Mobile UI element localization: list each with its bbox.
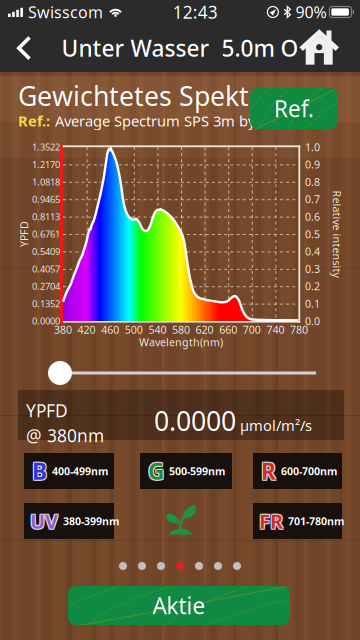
staticText: 0.6	[305, 209, 320, 224]
staticText: FR	[258, 509, 282, 535]
staticText: 12:43	[173, 0, 218, 23]
staticText: FR	[258, 507, 282, 533]
staticText: 580	[172, 322, 190, 337]
button[interactable]: UV	[24, 503, 114, 539]
staticText: Average Spectrum SPS 3m by R.	[55, 111, 272, 130]
staticText: Gewichtetes Spektrum	[18, 78, 301, 113]
staticText: 0.2	[305, 279, 320, 293]
staticText: 500-599nm	[169, 464, 225, 478]
staticText: Ref.	[274, 93, 314, 123]
staticText: 0.0000	[32, 315, 60, 327]
staticText: Unter Wasser 5.0m O	[61, 33, 298, 63]
button[interactable]: R	[253, 453, 342, 489]
staticText: 0.1	[305, 296, 320, 311]
staticText: 0.8113	[32, 210, 60, 223]
staticText: 540	[148, 322, 166, 337]
staticText: 380	[54, 322, 72, 337]
staticText: Wavelength(nm)	[139, 335, 223, 349]
staticText: Aktie	[152, 590, 205, 620]
staticText: 740	[266, 322, 284, 337]
staticText: 0.3	[305, 262, 320, 276]
staticText: @ 380nm	[26, 424, 104, 447]
staticText: FR	[260, 509, 284, 535]
staticText: FR	[260, 507, 284, 533]
staticText: R	[261, 456, 276, 486]
staticText: 1.0	[305, 140, 320, 154]
staticText: 0.0000	[154, 403, 236, 438]
staticText: 0.6761	[32, 228, 60, 240]
staticText: 1.2170	[32, 158, 60, 171]
staticText: 0.4	[305, 244, 320, 258]
staticText: G	[147, 455, 163, 485]
staticText: 0.1352	[32, 297, 60, 310]
staticText: UV	[31, 509, 59, 535]
staticText: B	[33, 455, 48, 485]
staticText: 0.9	[305, 157, 320, 171]
staticText: 380-399nm	[63, 514, 119, 528]
staticText: UV	[30, 508, 58, 534]
staticText: 0.9465	[32, 193, 60, 205]
button[interactable]: Back	[2, 24, 46, 72]
staticText: G	[147, 457, 163, 487]
staticText: G	[149, 455, 165, 485]
staticText: 0.8	[305, 175, 320, 189]
staticText: R	[260, 457, 275, 487]
staticText: UV	[29, 507, 57, 533]
staticText: Swisscom	[28, 1, 103, 23]
staticText: 0.5	[305, 227, 320, 241]
staticText: B	[31, 457, 46, 487]
staticText: 400-499nm	[52, 464, 108, 478]
staticText: 420	[78, 322, 96, 337]
staticText: G	[148, 456, 164, 486]
staticText: B	[32, 456, 47, 486]
staticText: 0.0	[305, 314, 320, 328]
staticText: 460	[101, 322, 119, 337]
staticText: UV	[31, 507, 59, 533]
staticText: B	[33, 457, 48, 487]
staticText: 701-780nm	[288, 514, 344, 528]
staticText: Relative intensity	[293, 227, 360, 241]
staticText: µmol/m²/s	[240, 416, 312, 435]
staticText: 660	[219, 322, 237, 337]
staticText: 1.0818	[32, 176, 60, 188]
staticText: 780	[290, 322, 308, 337]
button[interactable]: FR	[253, 503, 342, 539]
staticText: 0.5409	[32, 245, 60, 258]
staticText: G	[149, 457, 165, 487]
staticText: 620	[196, 322, 214, 337]
staticText: 600-700nm	[281, 464, 337, 478]
staticText: YPFD	[11, 227, 37, 241]
button[interactable]: G	[140, 453, 232, 489]
staticText: 500	[125, 322, 143, 337]
staticText: 700	[243, 322, 261, 337]
staticText: Ref.:	[18, 111, 50, 130]
staticText: FR	[259, 508, 283, 534]
staticText: R	[262, 457, 277, 487]
staticText: B	[31, 455, 46, 485]
staticText: 90%	[295, 1, 326, 23]
button[interactable]: Aktie	[68, 586, 290, 625]
button[interactable]: Ref.	[250, 88, 338, 129]
staticText: 0.7	[305, 192, 320, 206]
staticText: R	[260, 455, 275, 485]
staticText: 1.3522	[32, 141, 60, 153]
staticText: 0.4057	[32, 263, 60, 275]
staticText: UV	[29, 509, 57, 535]
button[interactable]: Home	[295, 24, 343, 72]
staticText: 0.2704	[32, 280, 60, 292]
staticText: R	[262, 455, 277, 485]
staticText: YPFD	[26, 399, 68, 422]
button[interactable]: B	[24, 453, 114, 489]
